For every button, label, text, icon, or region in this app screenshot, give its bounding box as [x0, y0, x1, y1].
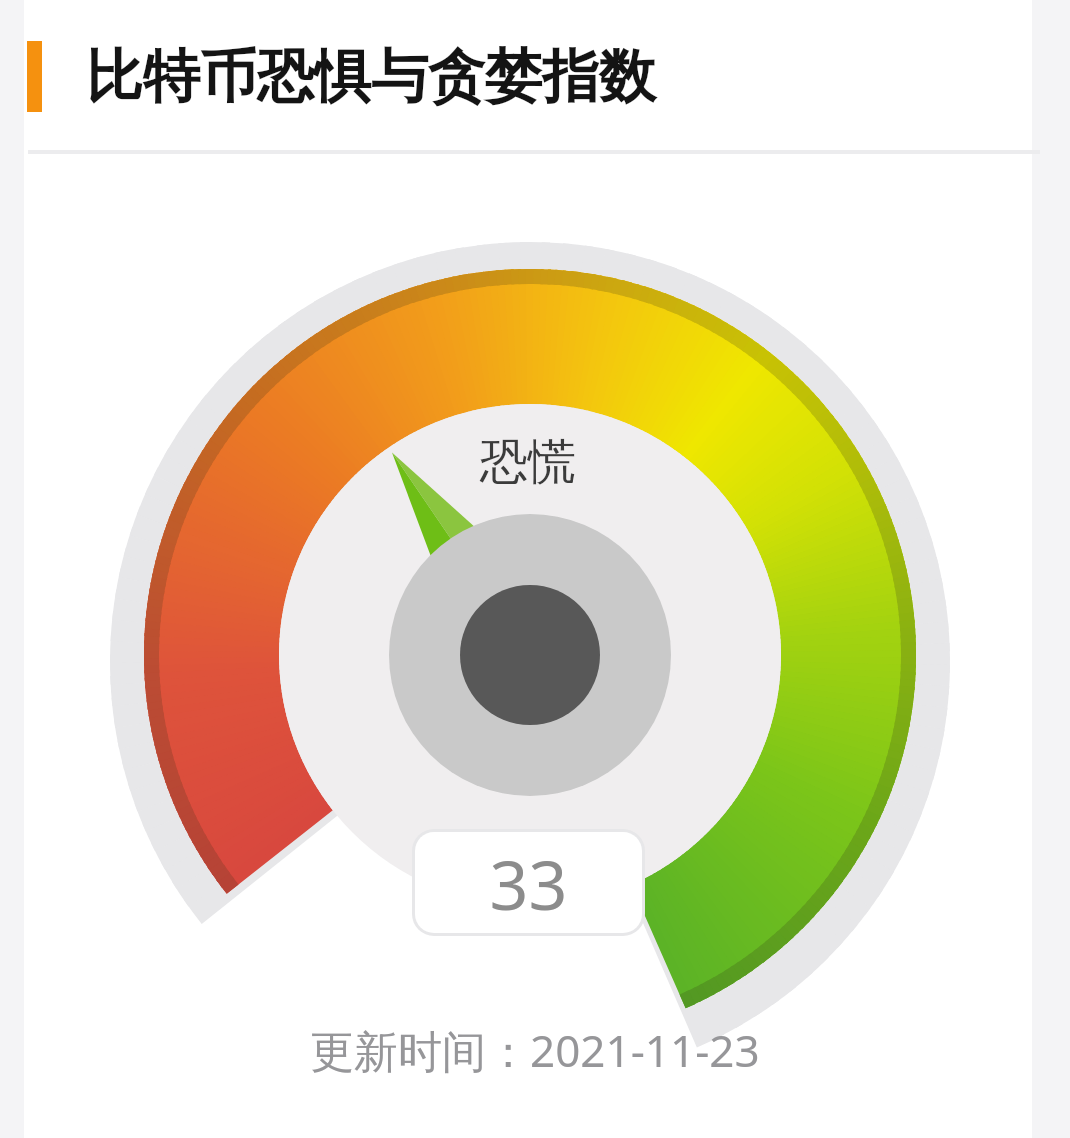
button[interactable]: Bitcoin Fear and Greed Index gauge, valu…	[0, 0, 1070, 1138]
